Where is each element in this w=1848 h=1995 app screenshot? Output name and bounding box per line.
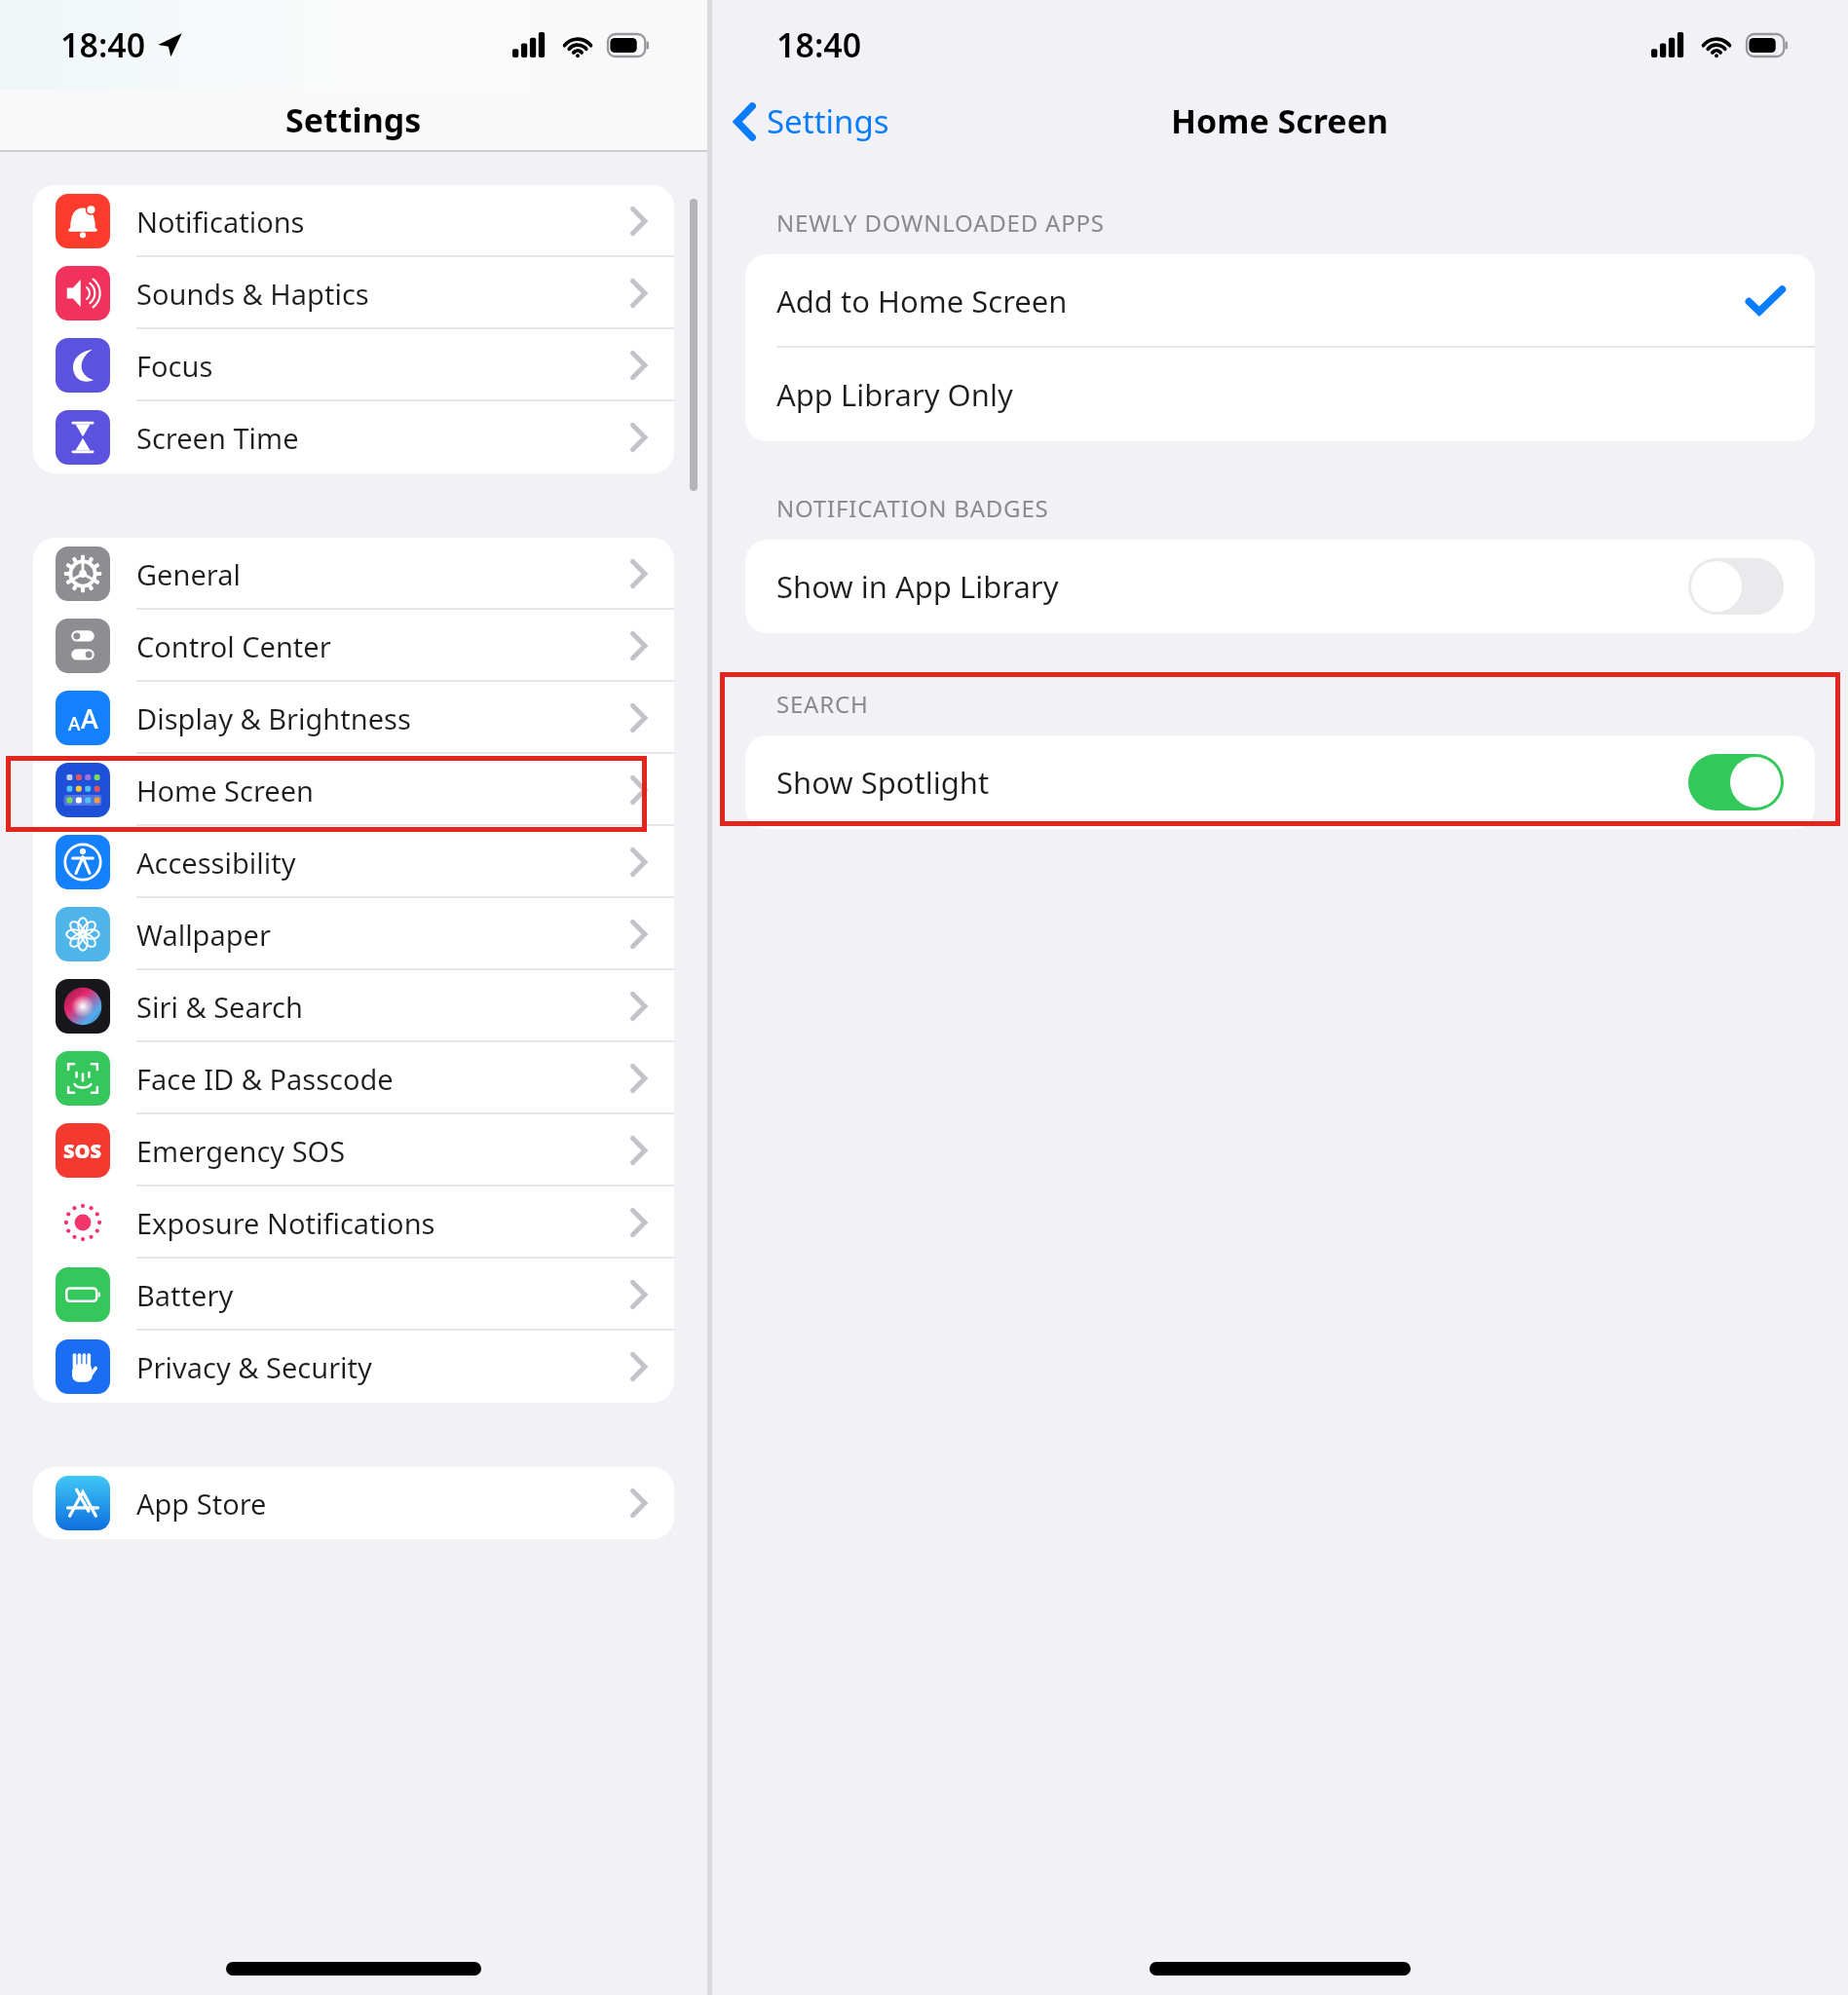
staticText: A bbox=[81, 700, 98, 736]
button[interactable]: General bbox=[33, 538, 674, 610]
staticText: Display & Brightness bbox=[136, 699, 411, 737]
button[interactable]: Battery bbox=[33, 1259, 674, 1331]
button[interactable]: Siri & Search bbox=[33, 970, 674, 1042]
staticText: 18:40 bbox=[776, 22, 862, 67]
button[interactable]: Accessibility bbox=[33, 826, 674, 898]
staticText: Sounds & Haptics bbox=[136, 275, 369, 313]
staticText: App Library Only bbox=[776, 374, 1013, 415]
staticText: Settings bbox=[285, 97, 422, 142]
staticText: Exposure Notifications bbox=[136, 1204, 435, 1242]
other: Location bbox=[156, 31, 183, 58]
staticText: Privacy & Security bbox=[136, 1348, 372, 1386]
staticText: Home Screen bbox=[1171, 98, 1389, 143]
button[interactable]: Privacy & Security bbox=[33, 1331, 674, 1403]
staticText: A bbox=[68, 711, 81, 736]
button[interactable]: Notifications bbox=[33, 185, 674, 257]
staticText: Show in App Library bbox=[776, 566, 1059, 607]
staticText: 18:40 bbox=[60, 22, 146, 67]
button[interactable]: App Library Only bbox=[745, 348, 1815, 441]
staticText: General bbox=[136, 555, 241, 593]
button[interactable]: SOS bbox=[33, 1114, 674, 1186]
staticText: App Store bbox=[136, 1485, 267, 1523]
staticText: NEWLY DOWNLOADED APPS bbox=[776, 207, 1105, 239]
staticText: Siri & Search bbox=[136, 988, 303, 1026]
staticText: SOS bbox=[63, 1138, 102, 1164]
button[interactable]: Add to Home Screen bbox=[745, 254, 1815, 348]
button[interactable]: App Store bbox=[33, 1467, 674, 1539]
staticText: Face ID & Passcode bbox=[136, 1060, 394, 1098]
button[interactable]: Home Screen bbox=[33, 754, 674, 826]
staticText: NOTIFICATION BADGES bbox=[776, 492, 1049, 524]
button[interactable]: Control Center bbox=[33, 610, 674, 682]
staticText: Screen Time bbox=[136, 419, 299, 457]
button[interactable]: Settings bbox=[734, 99, 889, 143]
button[interactable]: A bbox=[33, 682, 674, 754]
staticText: Home Screen bbox=[136, 772, 314, 809]
button[interactable]: Exposure Notifications bbox=[33, 1186, 674, 1259]
staticText: Focus bbox=[136, 347, 213, 385]
staticText: SEARCH bbox=[776, 688, 869, 720]
button[interactable]: Focus bbox=[33, 329, 674, 401]
staticText: Wallpaper bbox=[136, 916, 271, 954]
staticText: Show Spotlight bbox=[776, 762, 990, 803]
staticText: Notifications bbox=[136, 203, 305, 241]
button[interactable]: Wallpaper bbox=[33, 898, 674, 970]
staticText: Accessibility bbox=[136, 844, 296, 882]
button[interactable]: Screen Time bbox=[33, 401, 674, 473]
staticText: Emergency SOS bbox=[136, 1132, 346, 1170]
staticText: Settings bbox=[767, 99, 889, 143]
staticText: Add to Home Screen bbox=[776, 281, 1068, 321]
button[interactable]: Face ID & Passcode bbox=[33, 1042, 674, 1114]
staticText: Control Center bbox=[136, 627, 331, 665]
button[interactable]: Show in App Library bbox=[745, 540, 1815, 633]
staticText: Battery bbox=[136, 1276, 234, 1314]
button[interactable]: Sounds & Haptics bbox=[33, 257, 674, 329]
button[interactable]: Show Spotlight bbox=[745, 735, 1815, 829]
